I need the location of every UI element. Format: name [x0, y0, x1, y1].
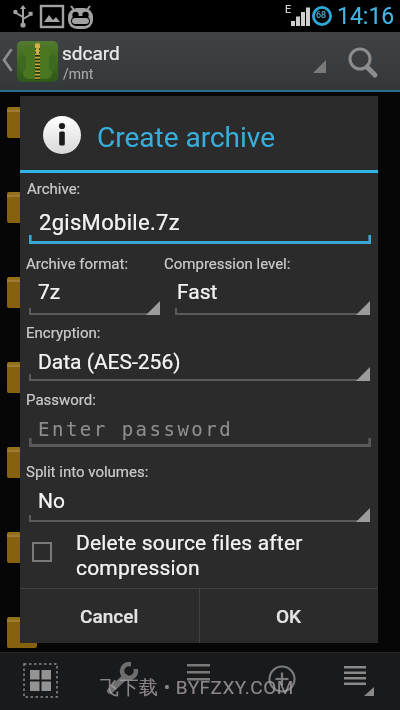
staticText: Cancel	[80, 605, 139, 627]
staticText: OK	[276, 605, 302, 627]
button[interactable]	[332, 656, 382, 706]
button[interactable]: OK	[200, 589, 378, 643]
button[interactable]	[97, 656, 147, 706]
button[interactable]	[16, 656, 66, 706]
staticText: Password:	[26, 391, 96, 409]
staticText: Archive format:	[26, 255, 129, 273]
staticText: 飞下载 • BYFZXY.COM	[100, 676, 294, 700]
staticText: No	[38, 489, 65, 514]
button[interactable]	[29, 487, 370, 524]
button[interactable]	[29, 412, 371, 446]
staticText: Fast	[177, 280, 218, 305]
staticText: 68	[316, 10, 327, 21]
button[interactable]	[29, 200, 371, 244]
staticText: 14:16	[337, 3, 395, 30]
button[interactable]	[29, 346, 370, 383]
staticText: 2gisMobile.7z	[39, 210, 180, 236]
staticText: /mnt	[63, 66, 94, 82]
button[interactable]	[257, 656, 307, 706]
staticText: Compression level:	[164, 255, 291, 273]
staticText: E	[285, 3, 292, 16]
staticText: 7z	[38, 280, 61, 305]
button[interactable]: Cancel	[20, 589, 199, 643]
button[interactable]	[175, 656, 225, 706]
button[interactable]	[26, 530, 366, 582]
staticText: Encryption:	[26, 324, 101, 342]
staticText: Create archive	[97, 121, 276, 154]
staticText: compression	[76, 556, 200, 581]
staticText: Archive:	[27, 180, 81, 198]
staticText: Delete source files after	[76, 531, 303, 556]
button[interactable]	[175, 278, 370, 315]
button[interactable]	[340, 44, 384, 84]
button[interactable]	[29, 278, 160, 315]
staticText: Data (AES-256)	[38, 350, 181, 375]
staticText: Split into volumes:	[26, 463, 149, 481]
staticText: sdcard	[62, 42, 120, 64]
staticText: Enter password	[38, 418, 234, 440]
button[interactable]	[17, 41, 58, 82]
